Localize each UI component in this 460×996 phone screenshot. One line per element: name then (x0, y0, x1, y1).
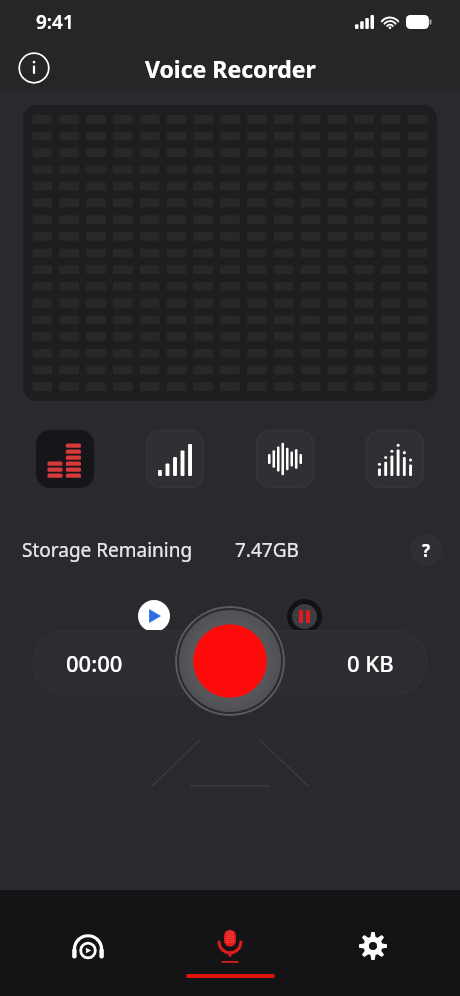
button[interactable]: Play (138, 600, 170, 632)
button[interactable]: Record (175, 606, 285, 716)
button[interactable]: Preset waveform (256, 430, 314, 488)
button[interactable]: 0 KB (252, 630, 427, 695)
button[interactable]: 00:00 (33, 630, 208, 695)
button[interactable]: Record tab (175, 918, 285, 974)
staticText: 9:41 (36, 9, 74, 35)
staticText: 0 KB (347, 648, 394, 678)
staticText: 7.47GB (235, 537, 299, 563)
staticText: Storage Remaining (22, 537, 193, 563)
button[interactable]: Preset dotted bars (366, 430, 424, 488)
button[interactable]: Pause (287, 599, 322, 634)
staticText: 00:00 (66, 648, 123, 678)
button[interactable]: Info (18, 52, 50, 84)
button[interactable]: Help (410, 534, 442, 566)
button[interactable]: Preset ascending bars (146, 430, 204, 488)
staticText: ? (422, 539, 431, 562)
button[interactable]: Preset LED bars (36, 430, 94, 488)
staticText: Voice Recorder (145, 53, 316, 84)
button[interactable]: Playback (33, 918, 143, 974)
button[interactable]: Settings (318, 918, 428, 974)
